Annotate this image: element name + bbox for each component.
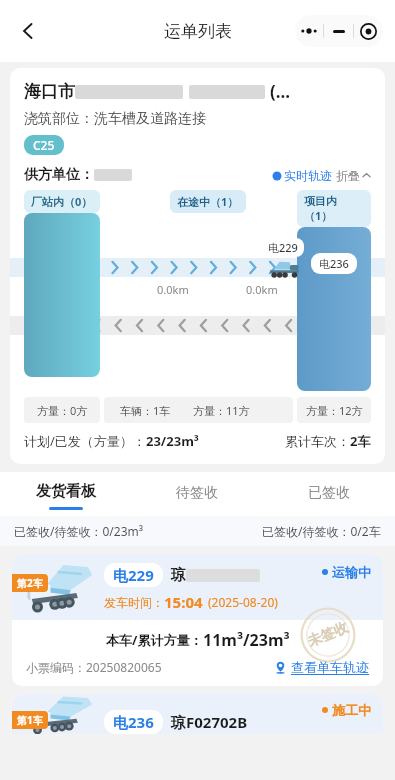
staticText: 项目内（1） xyxy=(304,194,364,223)
button[interactable]: Back xyxy=(6,9,50,53)
staticText: 0.0km xyxy=(246,282,278,297)
staticText: 电229 xyxy=(268,240,298,255)
button[interactable]: Minimize xyxy=(324,15,353,47)
staticText: C25 xyxy=(33,137,55,153)
staticText: 2车 xyxy=(350,432,371,450)
button[interactable]: 已签收 xyxy=(263,472,395,516)
button[interactable]: 实时轨迹 xyxy=(272,168,332,183)
staticText: 琼 xyxy=(171,566,186,585)
staticText: 计划/已发（方量）： xyxy=(24,432,146,450)
button[interactable]: 项目内（1） xyxy=(297,190,371,391)
staticText: 浇筑部位：洗车槽及道路连接 xyxy=(24,110,206,128)
staticText: 未签收 xyxy=(305,619,351,651)
button[interactable]: 在途中（1） xyxy=(170,190,246,213)
staticText: 小票编码：20250820065 xyxy=(26,659,162,675)
staticText: 待签收 xyxy=(176,484,218,502)
staticText: 车辆：1车 xyxy=(120,403,171,418)
button[interactable]: 第2车 xyxy=(12,554,383,686)
staticText: 第1车 xyxy=(17,713,43,727)
staticText: 电236 xyxy=(113,712,154,732)
staticText: 0.0km xyxy=(68,282,100,297)
staticText: 11m³/23m³ xyxy=(203,629,290,651)
staticText: (... xyxy=(270,80,291,103)
button[interactable]: 厂站内（0） xyxy=(24,190,100,377)
button[interactable]: 查看单车轨迹 xyxy=(274,659,369,675)
staticText: 折叠 xyxy=(336,168,360,183)
staticText: 厂站内（0） xyxy=(31,194,93,209)
button[interactable]: 待签收 xyxy=(131,472,263,516)
staticText: 本车/累计方量： xyxy=(106,631,203,649)
staticText: 海口市 xyxy=(24,81,75,102)
button[interactable]: More xyxy=(295,15,323,47)
button[interactable]: 折叠 xyxy=(336,168,371,183)
staticText: 方量：0方 xyxy=(37,403,88,418)
staticText: 琼F02702B xyxy=(171,712,248,732)
staticText: 查看单车轨迹 xyxy=(291,659,369,675)
staticText: 方量：12方 xyxy=(306,403,363,418)
staticText: 已签收/待签收：0/2车 xyxy=(262,523,381,539)
staticText: 第2车 xyxy=(17,576,43,590)
staticText: 发车时间： xyxy=(104,595,164,610)
staticText: 累计车次： xyxy=(285,433,350,449)
staticText: 方量：11方 xyxy=(193,403,250,418)
staticText: 施工中 xyxy=(332,702,371,718)
staticText: 已签收/待签收：0/23m³ xyxy=(14,523,143,539)
staticText: 已签收 xyxy=(308,484,350,502)
staticText: 在途中（1） xyxy=(177,194,239,209)
button[interactable]: 第1车 xyxy=(12,694,383,734)
staticText: 运单列表 xyxy=(164,21,232,42)
button[interactable]: 发货看板 xyxy=(0,472,131,516)
staticText: 运输中 xyxy=(332,564,371,580)
staticText: 供方单位： xyxy=(24,166,94,184)
staticText: 实时轨迹 xyxy=(284,168,332,183)
staticText: 15:04 xyxy=(164,592,203,612)
staticText: 23/23m³ xyxy=(146,432,199,450)
staticText: 电229 xyxy=(113,565,154,585)
staticText: 0.0km xyxy=(157,282,189,297)
staticText: 电236 xyxy=(319,256,349,271)
staticText: 发货看板 xyxy=(36,482,96,501)
staticText: (2025-08-20) xyxy=(208,594,278,610)
button[interactable]: Close xyxy=(354,15,383,47)
